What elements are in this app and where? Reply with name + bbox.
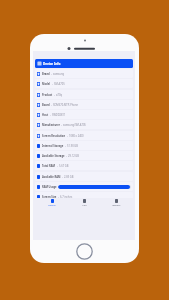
button[interactable]: Battery <box>103 198 129 206</box>
staticText: - <box>62 175 63 179</box>
staticText: Manufacturer <box>42 123 60 127</box>
staticText: Brand <box>42 72 50 76</box>
staticText: - <box>66 154 67 158</box>
staticText: Available RAM <box>42 175 61 179</box>
staticText: - <box>51 72 52 76</box>
staticText: Board <box>42 103 50 107</box>
staticText: SDM670-MTP-Phone <box>53 103 78 107</box>
button[interactable]: Screen Size <box>35 192 133 201</box>
staticText: - <box>54 93 55 97</box>
button[interactable]: RAM Usage <box>35 182 133 191</box>
staticText: Host <box>42 113 49 117</box>
staticText: SWDD2811 <box>52 113 66 117</box>
staticText: - <box>61 123 62 127</box>
staticText: 6.7 inches <box>60 195 73 199</box>
staticText: 5.67 GB <box>59 164 69 168</box>
staticText: - <box>50 113 51 117</box>
button[interactable]: Board <box>35 100 133 109</box>
staticText: - <box>65 144 66 148</box>
button[interactable]: CPU <box>71 198 97 206</box>
staticText: Total RAM <box>42 164 56 168</box>
staticText: RAM Usage <box>42 185 57 189</box>
staticText: - <box>57 164 58 168</box>
button[interactable]: Product <box>35 90 133 99</box>
button[interactable]: Brand <box>35 69 133 78</box>
button[interactable]: Device <box>39 198 65 206</box>
staticText: Product <box>42 93 53 97</box>
staticText: 2.85 GB <box>64 175 74 179</box>
staticText: - <box>58 195 59 199</box>
button[interactable]: Available RAM <box>35 172 133 181</box>
staticText: samsung <box>53 72 65 76</box>
button[interactable]: Screen Resolution <box>35 131 133 140</box>
staticText: Device Info <box>43 62 61 66</box>
button[interactable]: Manufacturer <box>35 120 133 129</box>
staticText: - <box>52 82 53 86</box>
staticText: Model <box>42 82 51 86</box>
staticText: Screen Resolution <box>42 134 66 138</box>
staticText: - <box>67 134 68 138</box>
button[interactable]: Internal Storage <box>35 141 133 150</box>
button[interactable]: Host <box>35 110 133 119</box>
staticText: samsung/SM-A705 <box>63 123 86 127</box>
button[interactable]: Model <box>35 79 133 88</box>
staticText: - <box>51 103 52 107</box>
staticText: a70q <box>56 93 63 97</box>
button[interactable]: Available Storage <box>35 151 133 160</box>
staticText: Battery <box>112 203 121 206</box>
staticText: 1080 x 2400 <box>69 134 84 138</box>
button[interactable]: Total RAM <box>35 161 133 170</box>
staticText: Available Storage <box>42 154 65 158</box>
button[interactable]: Device Info <box>35 59 133 68</box>
staticText: CPU <box>82 203 87 206</box>
staticText: Internal Storage <box>42 144 64 148</box>
staticText: Screen Size <box>42 195 57 199</box>
staticText: 51.90 GB <box>67 144 78 148</box>
staticText: 29.12 GB <box>68 154 79 158</box>
staticText: SM-A705 <box>54 82 65 86</box>
staticText: Device <box>48 203 56 206</box>
